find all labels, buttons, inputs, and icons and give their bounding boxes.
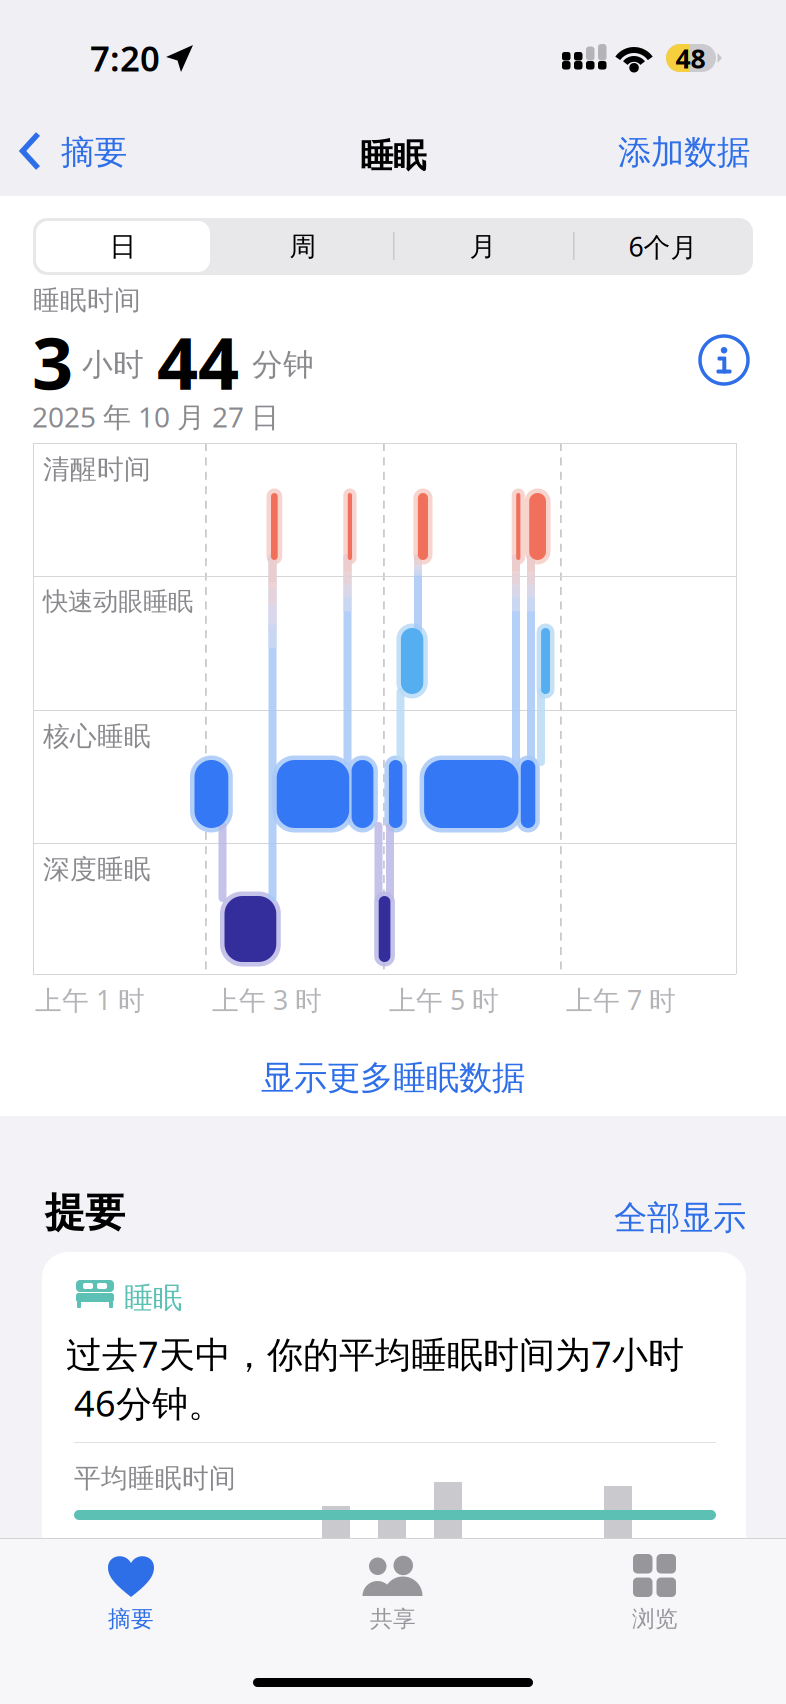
staticText: 小时 xyxy=(82,346,144,384)
staticText: 深度睡眠 xyxy=(43,853,151,886)
button[interactable]: 添加数据 xyxy=(604,113,764,191)
staticText: 2025 年 10 月 27 日 xyxy=(32,398,279,435)
button[interactable]: 共享 xyxy=(262,1548,524,1644)
button[interactable]: 周 xyxy=(213,218,393,275)
staticText: 睡眠时间 xyxy=(33,284,141,317)
staticText: 共享 xyxy=(370,1605,416,1633)
staticText: 摘要 xyxy=(108,1605,154,1633)
staticText: 6个月 xyxy=(628,229,697,264)
staticText: 46分钟。 xyxy=(74,1379,224,1427)
staticText: 48 xyxy=(675,40,705,76)
staticText: 浏览 xyxy=(632,1605,678,1633)
staticText: 月 xyxy=(469,230,496,263)
button[interactable]: 6个月 xyxy=(573,218,753,275)
staticText: 周 xyxy=(289,230,316,263)
staticText: 睡眠 xyxy=(124,1280,182,1316)
button[interactable]: 显示更多睡眠数据 xyxy=(0,1035,786,1121)
staticText: 7:20 xyxy=(90,35,160,81)
staticText: 过去7天中，你的平均睡眠时间为7小时 xyxy=(66,1330,684,1378)
staticText: 添加数据 xyxy=(618,132,750,173)
button[interactable]: 浏览 xyxy=(524,1548,786,1644)
staticText: 上午 1 时 xyxy=(35,982,145,1017)
button[interactable]: 摘要 xyxy=(0,113,150,191)
button[interactable]: 关于睡眠数据 xyxy=(700,336,748,384)
staticText: 3 xyxy=(32,314,73,410)
staticText: 摘要 xyxy=(61,132,127,173)
staticText: 分钟 xyxy=(252,346,314,384)
staticText: 平均睡眠时间 xyxy=(74,1462,236,1495)
staticText: 显示更多睡眠数据 xyxy=(261,1057,525,1098)
staticText: 核心睡眠 xyxy=(43,720,151,753)
button[interactable]: 全部显示 xyxy=(596,1190,746,1246)
staticText: 睡眠 xyxy=(360,135,426,176)
button[interactable]: 摘要 xyxy=(0,1548,262,1644)
staticText: 上午 5 时 xyxy=(389,982,499,1017)
button[interactable]: 月 xyxy=(393,218,573,275)
staticText: 日 xyxy=(109,230,136,263)
staticText: 全部显示 xyxy=(614,1197,746,1238)
staticText: 清醒时间 xyxy=(43,453,151,486)
staticText: 提要 xyxy=(45,1188,125,1237)
staticText: 上午 7 时 xyxy=(566,982,676,1017)
button[interactable]: 日 xyxy=(36,218,210,275)
staticText: 上午 3 时 xyxy=(212,982,322,1017)
staticText: 44 xyxy=(157,314,239,410)
staticText: 快速动眼睡眠 xyxy=(43,586,193,617)
